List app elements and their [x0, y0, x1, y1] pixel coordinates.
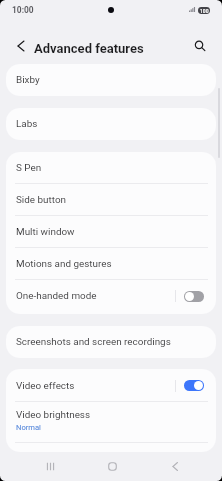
button[interactable]: Search: [186, 28, 214, 64]
staticText: Labs: [16, 118, 38, 130]
staticText: Side button: [16, 194, 67, 206]
button[interactable]: Motions and gestures: [6, 248, 216, 280]
button[interactable]: Home: [97, 452, 127, 481]
button[interactable]: Recent apps: [35, 452, 65, 481]
button[interactable]: Multi window: [6, 216, 216, 248]
staticText: S Pen: [16, 162, 42, 174]
button[interactable]: Navigate up: [8, 28, 34, 64]
button[interactable]: Back: [160, 452, 190, 481]
button[interactable]: Screenshots and screen recordings: [6, 326, 216, 358]
staticText: 100: [200, 8, 209, 14]
staticText: Normal: [16, 423, 41, 432]
staticText: Bixby: [16, 74, 40, 86]
button[interactable]: Video effects: [6, 369, 216, 402]
button[interactable]: Video brightness: [6, 402, 216, 443]
button[interactable]: Turn off: [184, 380, 204, 391]
staticText: Advanced features: [34, 41, 144, 56]
staticText: Multi window: [16, 226, 75, 238]
button[interactable]: One-handed mode: [6, 280, 216, 312]
button[interactable]: Side button: [6, 184, 216, 216]
button[interactable]: Turn on: [184, 291, 204, 302]
staticText: One-handed mode: [16, 290, 97, 302]
staticText: Video brightness: [16, 409, 91, 421]
staticText: Video effects: [16, 380, 75, 392]
button[interactable]: S Pen: [6, 152, 216, 184]
button[interactable]: Bixby: [6, 64, 216, 96]
button[interactable]: Labs: [6, 108, 216, 140]
staticText: Screenshots and screen recordings: [16, 336, 171, 348]
staticText: Motions and gestures: [16, 258, 112, 270]
staticText: 10:00: [12, 5, 34, 15]
